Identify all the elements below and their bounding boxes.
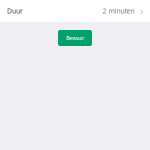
staticText: Bewaar <box>66 34 84 42</box>
staticText: 2 minuten <box>102 7 134 15</box>
staticText: Duur <box>7 7 23 15</box>
button[interactable]: Duur <box>0 0 150 22</box>
button[interactable]: Bewaar <box>58 30 92 46</box>
